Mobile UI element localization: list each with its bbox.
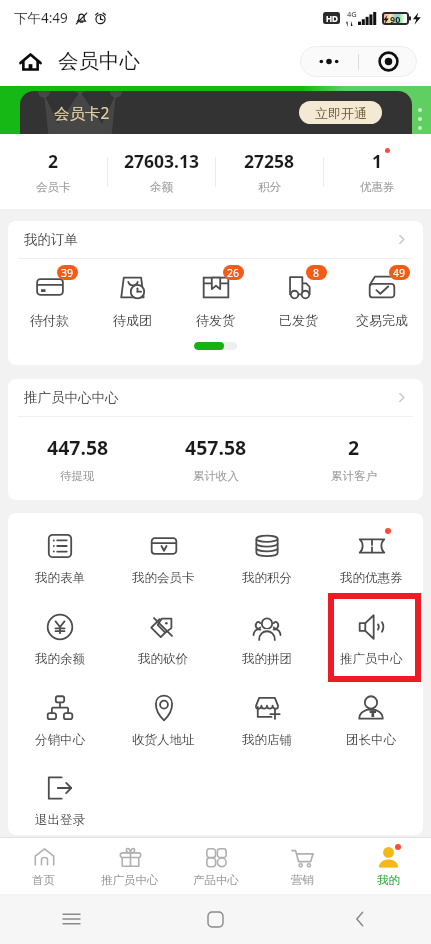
button[interactable]: 我的店铺: [242, 693, 292, 748]
staticText: 会员中心: [58, 48, 140, 74]
button[interactable]: 8: [257, 272, 340, 328]
staticText: 我的订单: [24, 231, 78, 248]
staticText: 首页: [32, 873, 55, 887]
button[interactable]: 27603.13: [108, 134, 215, 209]
button[interactable]: 1: [324, 134, 431, 209]
staticText: 会员卡2: [54, 102, 110, 123]
staticText: 27603.13: [124, 149, 199, 173]
staticText: 已发货: [279, 312, 318, 328]
staticText: 我的店铺: [242, 732, 292, 748]
staticText: 26: [227, 266, 240, 280]
staticText: 累计收入: [193, 469, 239, 483]
button[interactable]: Back: [287, 894, 431, 944]
staticText: 90: [390, 13, 401, 25]
staticText: 我的优惠券: [340, 570, 403, 586]
staticText: 交易完成: [356, 312, 408, 328]
staticText: 待提现: [60, 469, 95, 483]
staticText: 2: [48, 149, 59, 173]
staticText: 457.58: [185, 434, 247, 461]
staticText: 我的表单: [35, 570, 85, 586]
staticText: 49: [393, 266, 406, 280]
button[interactable]: 营销: [259, 838, 345, 894]
button[interactable]: 我的订单: [8, 221, 423, 258]
button[interactable]: Close mini program: [359, 46, 417, 77]
button[interactable]: 2: [285, 417, 423, 500]
button[interactable]: 首页: [0, 838, 87, 894]
button[interactable]: 收货人地址: [132, 693, 195, 748]
button[interactable]: 立即开通: [299, 101, 382, 124]
button[interactable]: 27258: [216, 134, 323, 209]
staticText: 8: [313, 266, 320, 280]
button[interactable]: Recent apps: [0, 894, 143, 944]
button[interactable]: 26: [174, 272, 257, 328]
staticText: 立即开通: [315, 105, 367, 121]
button[interactable]: 我的: [345, 838, 431, 894]
staticText: 退出登录: [35, 812, 85, 828]
button[interactable]: 49: [340, 272, 423, 328]
button[interactable]: 推广员中心中心: [8, 379, 423, 416]
button[interactable]: 我的拼团: [242, 612, 292, 667]
staticText: 我的会员卡: [132, 570, 195, 586]
staticText: 2: [348, 434, 360, 461]
staticText: 待付款: [30, 312, 69, 328]
staticText: 下午4:49: [14, 9, 68, 27]
staticText: 团长中心: [346, 732, 396, 748]
staticText: 27258: [244, 149, 295, 173]
button[interactable]: 产品中心: [173, 838, 259, 894]
button[interactable]: 457.58: [147, 417, 285, 500]
staticText: 优惠券: [360, 180, 395, 194]
button[interactable]: 我的砍价: [138, 612, 188, 667]
button[interactable]: More options: [300, 46, 358, 77]
staticText: 我的砍价: [138, 651, 188, 667]
button[interactable]: 退出登录: [35, 773, 85, 828]
button[interactable]: 推广员中心: [340, 612, 403, 667]
staticText: 待发货: [196, 312, 235, 328]
staticText: 会员卡: [36, 180, 71, 194]
button[interactable]: 我的表单: [35, 531, 85, 586]
button[interactable]: 待成团: [91, 272, 174, 328]
button[interactable]: 我的积分: [242, 531, 292, 586]
staticText: 我的余额: [35, 651, 85, 667]
button[interactable]: 推广员中心: [87, 838, 173, 894]
staticText: 我的拼团: [242, 651, 292, 667]
staticText: 收货人地址: [132, 732, 195, 748]
button[interactable]: 会员卡2: [20, 91, 412, 134]
staticText: 推广员中心中心: [24, 389, 119, 406]
staticText: 4G: [347, 9, 357, 19]
staticText: 1: [372, 149, 383, 173]
staticText: 待成团: [113, 312, 152, 328]
staticText: 产品中心: [193, 873, 239, 887]
button[interactable]: 分销中心: [35, 693, 85, 748]
staticText: 我的积分: [242, 570, 292, 586]
staticText: 累计客户: [331, 469, 377, 483]
button[interactable]: 447.58: [8, 417, 147, 500]
button[interactable]: 39: [8, 272, 91, 328]
button[interactable]: 团长中心: [346, 693, 396, 748]
button[interactable]: 我的余额: [35, 612, 85, 667]
staticText: 推广员中心: [101, 873, 159, 887]
staticText: 积分: [258, 180, 281, 194]
button[interactable]: Home: [143, 894, 287, 944]
button[interactable]: 我的会员卡: [132, 531, 195, 586]
button[interactable]: Home: [14, 45, 47, 78]
staticText: 余额: [150, 180, 173, 194]
staticText: 我的: [377, 873, 400, 887]
button[interactable]: 2: [0, 134, 107, 209]
staticText: 营销: [291, 873, 314, 887]
button[interactable]: 我的优惠券: [340, 531, 403, 586]
staticText: 推广员中心: [340, 651, 403, 667]
staticText: 39: [61, 266, 74, 280]
staticText: 分销中心: [35, 732, 85, 748]
staticText: 447.58: [47, 434, 109, 461]
staticText: HD: [326, 13, 338, 24]
